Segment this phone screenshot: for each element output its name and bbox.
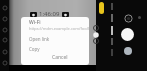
button[interactable]: Gallery (124, 47, 132, 55)
button[interactable]: Flash (99, 2, 104, 14)
button[interactable]: Cancel (50, 53, 70, 62)
button[interactable]: More (137, 15, 142, 20)
staticText: Open link (29, 36, 50, 42)
button[interactable]: Switch camera (124, 14, 133, 23)
button[interactable]: Camera control (2, 37, 8, 43)
staticText: Cancel (52, 54, 68, 61)
button[interactable]: Shutter (121, 28, 134, 41)
button[interactable]: Zoom (93, 38, 99, 44)
button[interactable]: Camera control (2, 16, 8, 22)
staticText: Wi-Fi (29, 19, 41, 26)
button[interactable]: Camera control (2, 60, 8, 66)
staticText: 1:46:09 (39, 10, 60, 18)
button[interactable]: Zoom (93, 25, 99, 31)
button[interactable]: Copy (21, 44, 89, 54)
staticText: https://mdm.example.com/foo/bar (29, 26, 89, 31)
button[interactable]: Zoom (93, 32, 99, 38)
button[interactable]: Camera control (2, 27, 8, 33)
button[interactable]: Open link (21, 34, 89, 44)
button[interactable]: Camera control (2, 5, 8, 11)
button[interactable]: Camera control (2, 49, 8, 55)
staticText: Copy (29, 46, 40, 52)
